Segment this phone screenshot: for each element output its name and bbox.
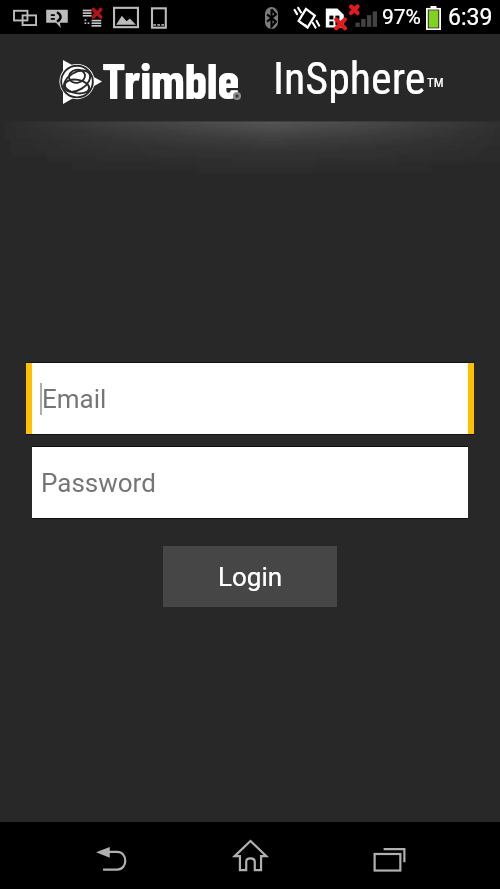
button[interactable]: Back — [42, 822, 181, 889]
button[interactable]: Login — [163, 546, 337, 607]
staticText: Trimble — [102, 49, 240, 109]
staticText: 6:39 — [448, 4, 493, 31]
staticText: InSphere — [273, 53, 426, 105]
staticText: Email — [42, 384, 107, 414]
button[interactable]: Password — [32, 446, 468, 519]
button[interactable]: Recent apps — [320, 822, 459, 889]
staticText: TM — [427, 75, 444, 90]
staticText: 97% — [382, 5, 421, 30]
button[interactable]: Home — [181, 822, 320, 889]
staticText: Login — [218, 562, 283, 592]
staticText: Password — [41, 468, 156, 498]
button[interactable]: Email — [26, 362, 474, 435]
